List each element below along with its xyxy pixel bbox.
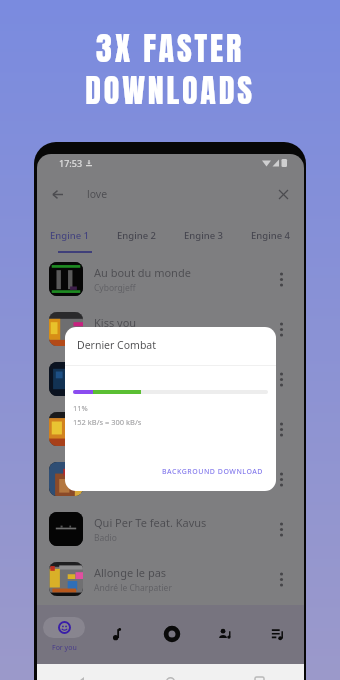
staticText: Dioxyde bbox=[94, 382, 127, 394]
staticText: Engine 3 bbox=[184, 229, 224, 242]
button[interactable]: More options bbox=[269, 367, 293, 391]
staticText: DOWNLOADS bbox=[85, 66, 255, 114]
button[interactable]: Engine 2 bbox=[103, 216, 170, 254]
staticText: Kiss you bbox=[94, 315, 137, 330]
button[interactable]: Clear search bbox=[271, 182, 295, 206]
staticText: Au bout du monde bbox=[94, 265, 191, 280]
staticText: Love me bbox=[94, 415, 138, 430]
button[interactable]: More options bbox=[269, 417, 293, 441]
button[interactable]: Songs bbox=[91, 605, 145, 664]
button[interactable]: Qui Per Te feat. Kavus bbox=[37, 504, 304, 554]
button[interactable]: Dernier Combat bbox=[37, 354, 304, 404]
button[interactable]: For you bbox=[37, 605, 91, 664]
button[interactable]: More options bbox=[269, 467, 293, 491]
staticText: For you bbox=[52, 643, 77, 653]
staticText: Dernier Combat bbox=[94, 365, 177, 380]
button[interactable]: More options bbox=[269, 517, 293, 541]
staticText: 11% bbox=[73, 403, 88, 413]
button[interactable]: More options bbox=[269, 567, 293, 591]
staticText: Nito bbox=[94, 482, 111, 494]
button[interactable]: Love me bbox=[37, 404, 304, 454]
button[interactable]: Albums bbox=[145, 605, 198, 664]
button[interactable]: Kiss you bbox=[37, 304, 304, 354]
staticText: Cyborgjeff bbox=[94, 282, 136, 294]
button[interactable]: Playlists bbox=[251, 605, 304, 664]
staticText: André le Charpatier bbox=[94, 582, 172, 594]
staticText: BACKGROUND DOWNLOAD bbox=[162, 467, 263, 477]
button[interactable]: More options bbox=[269, 267, 293, 291]
button[interactable]: Engine 1 bbox=[37, 216, 103, 254]
button[interactable]: Artists bbox=[198, 605, 251, 664]
button[interactable]: Engine 4 bbox=[237, 216, 304, 254]
button[interactable]: BACKGROUND DOWNLOAD bbox=[156, 462, 269, 482]
staticText: Dernier Combat bbox=[77, 338, 157, 352]
staticText: Qui Per Te feat. Kavus bbox=[94, 515, 207, 530]
button[interactable]: Au bout du monde bbox=[37, 254, 304, 304]
button[interactable]: Engine 3 bbox=[170, 216, 237, 254]
button[interactable]: Mon amour bbox=[37, 454, 304, 504]
staticText: Allonge le pas bbox=[94, 565, 167, 580]
staticText: Engine 1 bbox=[50, 229, 90, 242]
staticText: Lova bbox=[94, 332, 113, 344]
button[interactable]: Back bbox=[45, 182, 69, 206]
staticText: 152 kB/s = 300 kB/s bbox=[73, 417, 142, 427]
staticText: 17:53 bbox=[59, 157, 83, 169]
staticText: Engine 2 bbox=[117, 229, 157, 242]
button[interactable]: Allonge le pas bbox=[37, 554, 304, 604]
staticText: love bbox=[87, 187, 108, 201]
staticText: Badio bbox=[94, 532, 117, 544]
button[interactable]: More options bbox=[269, 317, 293, 341]
staticText: 3X FASTER bbox=[96, 24, 244, 72]
staticText: Engine 4 bbox=[251, 229, 291, 242]
